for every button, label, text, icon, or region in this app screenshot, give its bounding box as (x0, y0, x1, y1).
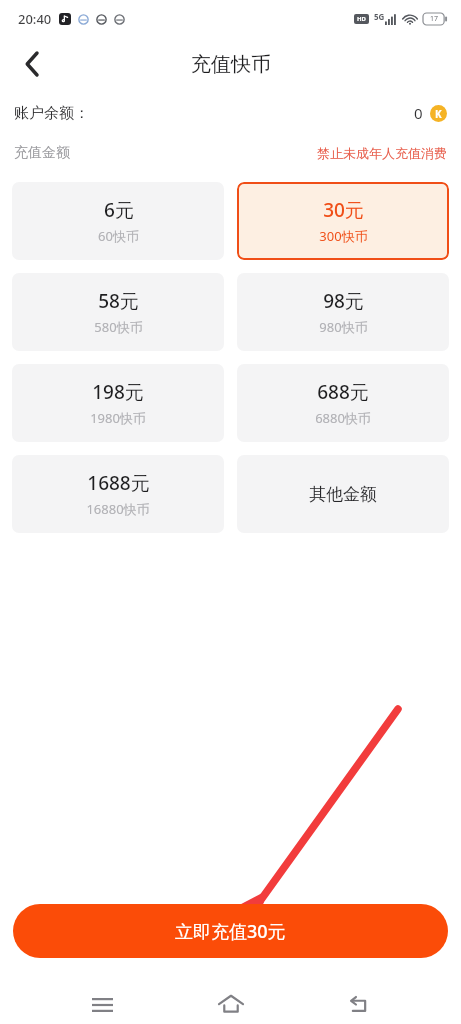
button[interactable]: 立即充值30元 (13, 904, 448, 958)
staticText: K (435, 107, 442, 121)
staticText: 充值快币 (191, 52, 271, 77)
button[interactable]: 688元 (237, 364, 449, 442)
button[interactable]: Home (205, 985, 257, 1024)
staticText: 688元 (317, 379, 369, 405)
button[interactable]: Back (10, 42, 54, 86)
button[interactable]: 1688元 (12, 455, 224, 533)
staticText: 1980快币 (90, 409, 146, 427)
staticText: 账户余额： (14, 104, 89, 123)
staticText: 30元 (323, 197, 364, 223)
staticText: HD (357, 15, 366, 23)
button[interactable]: 30元 (237, 182, 449, 260)
staticText: 580快币 (94, 318, 143, 336)
staticText: 禁止未成年人充值消费 (317, 145, 447, 161)
staticText: 0 (414, 103, 423, 123)
staticText: 60快币 (98, 227, 139, 245)
staticText: 300快币 (319, 227, 368, 245)
staticText: 16880快币 (86, 500, 150, 518)
button[interactable]: 6元 (12, 182, 224, 260)
button[interactable]: Back (333, 985, 385, 1024)
staticText: 17 (430, 14, 439, 24)
button[interactable]: Recents (76, 985, 128, 1024)
button[interactable]: 198元 (12, 364, 224, 442)
staticText: 充值金额 (14, 144, 70, 162)
staticText: 98元 (323, 288, 364, 314)
button[interactable]: 其他金额 (237, 455, 449, 533)
button[interactable]: 98元 (237, 273, 449, 351)
staticText: 980快币 (319, 318, 368, 336)
staticText: 立即充值30元 (175, 919, 286, 944)
staticText: 6880快币 (315, 409, 371, 427)
staticText: 5G (374, 11, 385, 22)
staticText: 1688元 (87, 470, 150, 496)
staticText: 58元 (98, 288, 139, 314)
staticText: 20:40 (18, 10, 52, 28)
staticText: 198元 (92, 379, 144, 405)
staticText: 其他金额 (309, 484, 377, 505)
staticText: 6元 (104, 197, 134, 223)
button[interactable]: 58元 (12, 273, 224, 351)
